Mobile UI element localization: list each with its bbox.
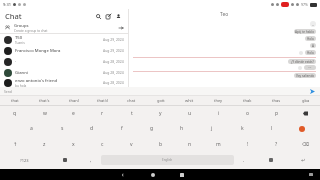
button[interactable]: they — [204, 96, 233, 105]
staticText: ↵ — [301, 157, 306, 163]
button[interactable]: Hola — [305, 50, 316, 55]
button[interactable]: ↵ — [287, 152, 320, 168]
button[interactable]: thak — [233, 96, 262, 105]
button[interactable]: Recents — [176, 169, 187, 180]
button[interactable]: ! — [233, 136, 262, 152]
button[interactable]: r — [88, 106, 117, 121]
staticText: Send — [4, 89, 12, 94]
button[interactable]: l — [257, 121, 287, 136]
button[interactable]: h — [167, 121, 197, 136]
button[interactable]: a — [16, 121, 47, 136]
button[interactable]: whit — [175, 96, 204, 105]
button[interactable]: , — [81, 152, 101, 168]
staticText: Groups — [14, 23, 29, 29]
button[interactable]: ?123 — [0, 152, 48, 168]
button[interactable]: u — [175, 106, 204, 121]
button[interactable]: gba — [291, 96, 320, 105]
button[interactable]: Back — [118, 169, 129, 180]
button[interactable]: that — [0, 96, 30, 105]
button[interactable]: enzo antonio's friend — [0, 78, 128, 87]
staticText: bu hola — [15, 84, 27, 87]
staticText: Aug 28, 2024 — [103, 80, 124, 85]
button[interactable]: k — [227, 121, 257, 136]
button[interactable]: b — [146, 136, 175, 152]
button[interactable]: thanl — [59, 96, 88, 105]
button[interactable]: Gianni — [0, 67, 128, 78]
button[interactable]: q — [0, 106, 30, 121]
button[interactable]: o — [233, 106, 262, 121]
button[interactable]: A — [310, 43, 316, 48]
button[interactable]: ⌫ — [291, 136, 320, 152]
button[interactable]: z — [30, 136, 59, 152]
button[interactable]: that'd — [88, 96, 117, 105]
staticText: A — [312, 44, 314, 48]
button[interactable]: · — [0, 56, 128, 67]
button[interactable]: that's — [30, 96, 59, 105]
button[interactable]: e — [59, 106, 88, 121]
staticText: p — [275, 110, 279, 117]
button[interactable]: Emoji — [48, 152, 81, 168]
button[interactable]: g — [137, 121, 167, 136]
button[interactable]: ···· — [304, 65, 316, 70]
staticText: s — [61, 125, 64, 132]
staticText: i — [218, 110, 220, 117]
staticText: g — [150, 125, 154, 132]
button[interactable]: j — [197, 121, 227, 136]
button[interactable]: Groups — [0, 22, 128, 33]
button[interactable]: Hola — [305, 36, 316, 41]
staticText: 97% — [301, 2, 308, 7]
button[interactable]: New chat — [103, 11, 113, 21]
staticText: thak — [243, 98, 252, 103]
staticText: , — [90, 157, 92, 164]
button[interactable]: T50 — [0, 34, 128, 45]
staticText: l — [271, 125, 273, 132]
button[interactable]: chat — [117, 96, 146, 105]
button[interactable]: x — [59, 136, 88, 152]
staticText: r — [101, 110, 104, 117]
button[interactable]: Francisco Monge Mora — [0, 45, 128, 56]
button[interactable]: Apá, te hablo — [294, 29, 316, 34]
button[interactable]: v — [117, 136, 146, 152]
staticText: · — [15, 59, 17, 65]
button[interactable]: ¿Y dónde estás? — [288, 59, 316, 64]
button[interactable]: w — [30, 106, 59, 121]
staticText: Hola — [307, 37, 314, 41]
staticText: u — [188, 110, 192, 117]
button[interactable]: ? — [262, 136, 291, 152]
staticText: Gianni — [15, 70, 28, 76]
staticText: e — [72, 110, 75, 117]
button[interactable]: Voy saliendo — [294, 73, 316, 78]
button[interactable]: n — [175, 136, 204, 152]
staticText: Aug 28, 2024 — [103, 59, 124, 64]
button[interactable]: Send — [309, 88, 316, 95]
button[interactable]: p — [262, 106, 291, 121]
button[interactable]: d — [77, 121, 107, 136]
button[interactable]: f — [107, 121, 137, 136]
button[interactable]: i — [204, 106, 233, 121]
staticText: that's — [39, 98, 50, 103]
staticText: Teo — [220, 11, 229, 18]
button[interactable]: Home — [147, 169, 158, 180]
button[interactable]: Settings — [254, 152, 287, 168]
button[interactable]: Enter — [287, 121, 317, 136]
staticText: q — [13, 110, 17, 117]
button[interactable]: Search — [93, 11, 103, 21]
button[interactable]: y — [146, 106, 175, 121]
button[interactable]: Space — [101, 155, 234, 165]
button[interactable]: ↑ — [0, 136, 30, 152]
button[interactable]: c — [88, 136, 117, 152]
button[interactable]: s — [47, 121, 77, 136]
staticText: Aug 28, 2024 — [103, 70, 124, 75]
staticText: v — [130, 141, 133, 148]
button[interactable]: m — [204, 136, 233, 152]
staticText: Chat — [5, 11, 22, 21]
button[interactable]: thas — [262, 96, 291, 105]
button[interactable]: Keyboard — [305, 169, 316, 180]
staticText: y — [159, 110, 162, 117]
button[interactable]: Profile — [113, 11, 123, 21]
staticText: that — [11, 98, 19, 103]
button[interactable]: gott — [146, 96, 175, 105]
button[interactable]: Backspace — [291, 106, 320, 121]
button[interactable]: t — [117, 106, 146, 121]
